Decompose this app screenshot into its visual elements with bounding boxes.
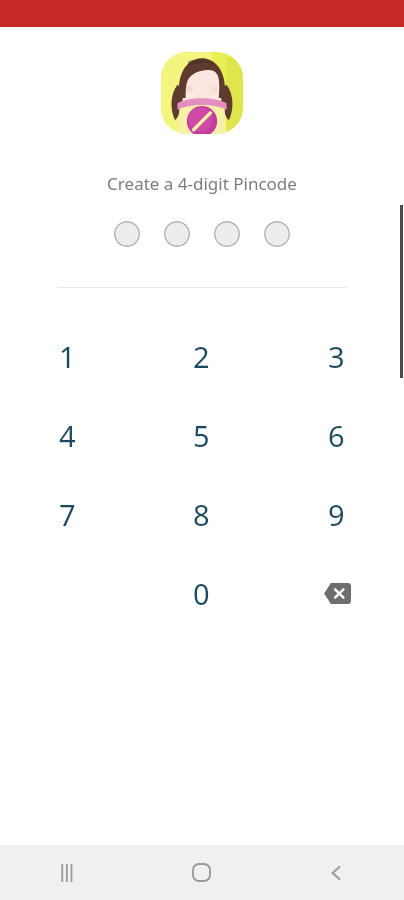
staticText: 1 xyxy=(59,337,76,376)
button[interactable]: 3 xyxy=(269,317,404,396)
button[interactable]: Home xyxy=(134,845,269,900)
button[interactable]: 4 xyxy=(0,396,134,475)
staticText: 2 xyxy=(193,337,210,376)
staticText: 6 xyxy=(328,416,345,455)
staticText: 0 xyxy=(193,574,210,613)
button[interactable]: 9 xyxy=(269,475,404,554)
staticText: 4 xyxy=(59,416,76,455)
button[interactable]: 1 xyxy=(0,317,134,396)
button[interactable]: 7 xyxy=(0,475,134,554)
staticText: 5 xyxy=(193,416,210,455)
button[interactable]: 2 xyxy=(134,317,269,396)
button[interactable]: Back xyxy=(269,845,404,900)
staticText: 7 xyxy=(59,495,76,534)
staticText: Create a 4-digit Pincode xyxy=(107,172,297,195)
button[interactable]: 8 xyxy=(134,475,269,554)
button[interactable]: 5 xyxy=(134,396,269,475)
button[interactable]: Recent apps xyxy=(0,845,134,900)
staticText: 3 xyxy=(328,337,345,376)
staticText: 8 xyxy=(193,495,210,534)
button[interactable]: Backspace xyxy=(269,554,404,633)
button[interactable]: App logo xyxy=(161,52,243,134)
button[interactable]: 0 xyxy=(134,554,269,633)
button[interactable]: 6 xyxy=(269,396,404,475)
staticText: 9 xyxy=(328,495,345,534)
